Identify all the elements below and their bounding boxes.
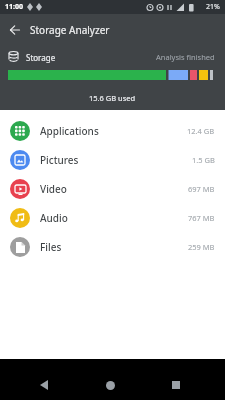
staticText: Storage Analyzer (30, 23, 110, 37)
staticText: 697 MB (188, 184, 215, 194)
button[interactable] (37, 378, 51, 392)
staticText: Audio (40, 211, 68, 225)
staticText: 21% (206, 2, 220, 12)
staticText: 15.6 GB used (89, 93, 136, 103)
staticText: 11:00 (5, 2, 23, 12)
button[interactable]: Pictures (0, 145, 225, 174)
button[interactable]: Video (0, 174, 225, 203)
staticText: 767 MB (188, 213, 215, 223)
button[interactable] (169, 378, 183, 392)
button[interactable]: Audio (0, 203, 225, 232)
staticText: Applications (40, 124, 99, 138)
button[interactable]: Applications (0, 116, 225, 145)
staticText: 1.5 GB (192, 155, 215, 165)
button[interactable] (4, 19, 26, 41)
staticText: Files (40, 240, 62, 254)
staticText: Analysis finished (156, 52, 215, 62)
button[interactable]: Files (0, 232, 225, 261)
button[interactable] (103, 378, 117, 392)
staticText: 12.4 GB (187, 126, 215, 136)
staticText: Video (40, 182, 67, 196)
staticText: 259 MB (188, 242, 215, 252)
staticText: Storage (26, 52, 56, 63)
staticText: Pictures (40, 153, 79, 167)
